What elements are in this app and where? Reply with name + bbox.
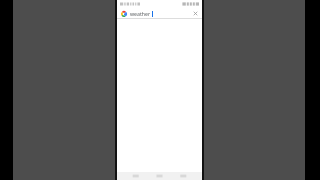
button[interactable]: Clear search xyxy=(191,9,199,17)
button[interactable]: Google xyxy=(117,8,202,18)
other: Google xyxy=(120,10,127,17)
staticText: weather xyxy=(130,10,151,17)
